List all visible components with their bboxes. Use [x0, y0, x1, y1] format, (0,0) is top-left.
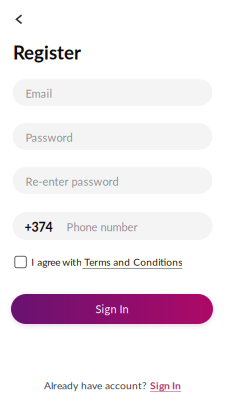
staticText: Email — [25, 87, 52, 100]
staticText: Sign In — [150, 379, 181, 391]
button[interactable]: Sign In — [150, 379, 181, 391]
button[interactable]: Back — [6, 6, 32, 32]
button[interactable]: Sign In — [11, 294, 213, 324]
staticText: +374 — [24, 220, 52, 234]
staticText: Sign In — [95, 302, 128, 315]
staticText: Already have account? — [44, 379, 150, 391]
staticText: Register — [13, 41, 81, 63]
staticText: Re-enter password — [25, 175, 118, 188]
staticText: Phone number — [66, 220, 137, 234]
staticText: I agree with Terms and Conditions — [31, 256, 182, 268]
staticText: Password — [25, 131, 72, 144]
button[interactable]: I agree with Terms and Conditions — [15, 255, 215, 269]
